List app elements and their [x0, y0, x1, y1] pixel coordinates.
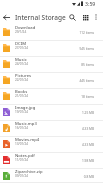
- button[interactable]: Movies.mp4: [0, 137, 103, 153]
- staticText: 29/1/24: [15, 30, 27, 34]
- button[interactable]: Notes.pdf: [0, 153, 103, 169]
- staticText: 13/01/24: [15, 142, 28, 146]
- staticText: 18 items: [81, 95, 94, 99]
- button[interactable]: Music: [0, 57, 103, 73]
- staticText: 4.33 MB: [81, 127, 94, 131]
- staticText: Pictures: [15, 73, 32, 79]
- button[interactable]: Grid view: [79, 11, 92, 24]
- staticText: Music: [15, 57, 27, 63]
- staticText: 22/01/24: [15, 78, 28, 82]
- staticText: 3:59: [85, 0, 96, 7]
- button[interactable]: Books: [0, 89, 103, 105]
- button[interactable]: Image.jpg: [0, 105, 103, 121]
- staticText: Download: [15, 25, 36, 31]
- staticText: 1.98 MB: [81, 159, 94, 163]
- staticText: Notes.pdf: [15, 153, 35, 159]
- button[interactable]: Pictures: [0, 73, 103, 89]
- staticText: 27/01/24: [15, 46, 28, 50]
- staticText: 21/01/24: [15, 94, 28, 98]
- staticText: DCIM: [15, 41, 27, 47]
- staticText: Movies.mp4: [15, 137, 40, 143]
- button[interactable]: DCIM: [0, 41, 103, 57]
- button[interactable]: Search: [66, 11, 79, 24]
- staticText: 16/01/24: [15, 126, 28, 130]
- staticText: Image.jpg: [15, 105, 36, 111]
- button[interactable]: Download: [0, 25, 103, 41]
- button[interactable]: Music.mp3: [0, 121, 103, 137]
- staticText: 19/01/24: [15, 110, 28, 114]
- staticText: Books: [15, 89, 28, 95]
- button[interactable]: More options: [92, 11, 99, 23]
- staticText: Music.mp3: [15, 121, 37, 127]
- staticText: 24/01/24: [15, 62, 28, 66]
- staticText: Ziparchive.zip: [15, 169, 43, 175]
- staticText: 1.25 MB: [81, 111, 94, 115]
- button[interactable]: Ziparchive.zip: [0, 169, 103, 183]
- staticText: 4.33 MB: [81, 143, 94, 147]
- staticText: 0.8 MB: [83, 175, 94, 179]
- staticText: 545 items: [79, 47, 94, 51]
- staticText: 11/01/24: [15, 158, 28, 162]
- staticText: 445 items: [79, 79, 94, 83]
- button[interactable]: Back: [0, 11, 13, 24]
- staticText: 85 items: [81, 63, 94, 67]
- staticText: Internal Storage: [15, 13, 66, 22]
- staticText: 112 items: [79, 31, 94, 35]
- staticText: 09/01/24: [15, 174, 28, 178]
